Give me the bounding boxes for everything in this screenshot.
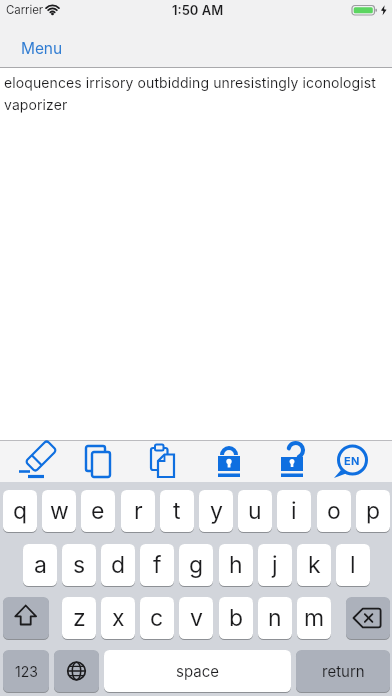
button[interactable]: f xyxy=(140,544,174,586)
button[interactable]: 123 xyxy=(3,650,49,692)
button[interactable] xyxy=(77,440,119,482)
button[interactable]: k xyxy=(297,544,331,586)
button[interactable]: v xyxy=(179,597,213,639)
staticText: p xyxy=(366,497,381,525)
button[interactable] xyxy=(18,440,60,482)
staticText: s xyxy=(73,551,86,579)
button[interactable] xyxy=(270,440,312,482)
staticText: k xyxy=(308,551,321,579)
staticText: d xyxy=(111,551,126,579)
button[interactable] xyxy=(346,597,390,639)
button[interactable] xyxy=(54,650,99,692)
staticText: EN xyxy=(344,454,360,467)
staticText: o xyxy=(327,497,341,525)
staticText: Carrier xyxy=(6,3,43,17)
button[interactable]: j xyxy=(258,544,292,586)
button[interactable]: m xyxy=(297,597,331,639)
button[interactable]: g xyxy=(179,544,213,586)
button[interactable]: y xyxy=(199,490,233,532)
button[interactable]: n xyxy=(258,597,292,639)
staticText: return xyxy=(322,662,365,680)
button[interactable]: u xyxy=(238,490,272,532)
button[interactable]: a xyxy=(23,544,57,586)
button[interactable]: z xyxy=(62,597,96,639)
staticText: t xyxy=(173,497,181,525)
staticText: q xyxy=(13,497,28,525)
staticText: j xyxy=(272,551,278,579)
button[interactable]: t xyxy=(160,490,194,532)
staticText: h xyxy=(229,551,243,579)
button[interactable]: Menu xyxy=(14,34,55,53)
staticText: v xyxy=(190,604,203,632)
staticText: a xyxy=(34,551,47,579)
staticText: space xyxy=(176,662,219,680)
button[interactable] xyxy=(3,597,49,639)
button[interactable]: q xyxy=(3,490,37,532)
button[interactable] xyxy=(208,440,250,482)
button[interactable] xyxy=(141,440,183,482)
button[interactable]: c xyxy=(140,597,174,639)
button[interactable]: b xyxy=(219,597,253,639)
button[interactable]: return xyxy=(296,650,390,692)
staticText: n xyxy=(268,604,282,632)
staticText: r xyxy=(134,497,143,525)
staticText: c xyxy=(150,604,164,632)
staticText: 123 xyxy=(15,663,38,680)
staticText: u xyxy=(248,497,262,525)
button[interactable]: o xyxy=(317,490,351,532)
button[interactable]: e xyxy=(81,490,115,532)
button[interactable]: r xyxy=(121,490,155,532)
staticText: w xyxy=(50,497,69,525)
staticText: f xyxy=(153,551,162,579)
staticText: z xyxy=(73,604,86,632)
staticText: 1:50 AM xyxy=(172,2,224,18)
staticText: eloquences irrisory outbidding unresisti… xyxy=(4,74,376,91)
staticText: i xyxy=(291,497,297,525)
staticText: x xyxy=(112,604,125,632)
button[interactable]: i xyxy=(277,490,311,532)
staticText: Menu xyxy=(21,39,62,58)
button[interactable]: d xyxy=(101,544,135,586)
staticText: l xyxy=(350,551,356,579)
button[interactable]: EN xyxy=(331,440,373,482)
staticText: g xyxy=(189,551,204,579)
staticText: e xyxy=(91,497,105,525)
button[interactable]: l xyxy=(336,544,370,586)
button[interactable]: s xyxy=(62,544,96,586)
staticText: b xyxy=(229,604,244,632)
button[interactable]: x xyxy=(101,597,135,639)
button[interactable]: h xyxy=(219,544,253,586)
staticText: vaporizer xyxy=(4,96,68,113)
staticText: m xyxy=(304,604,325,632)
staticText: y xyxy=(210,497,223,525)
button[interactable]: space xyxy=(104,650,291,692)
button[interactable]: w xyxy=(42,490,76,532)
button[interactable]: p xyxy=(356,490,390,532)
